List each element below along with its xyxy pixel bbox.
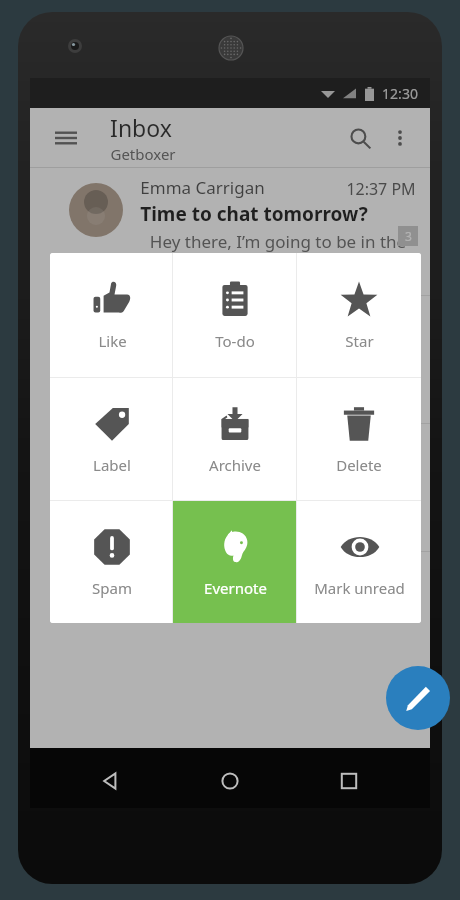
staticText: Inbox (110, 112, 172, 143)
staticText: Client introduction (140, 329, 319, 355)
staticText: Time to chat tomorrow? (140, 201, 368, 227)
button[interactable]: Spam (50, 500, 173, 623)
button[interactable]: Delete (297, 377, 421, 500)
staticText: Hannah Johnson (140, 304, 273, 327)
button[interactable]: Like (50, 253, 173, 377)
button[interactable]: Evernote (173, 500, 297, 623)
button[interactable]: Back (94, 764, 128, 798)
staticText: Getboxer (110, 144, 176, 164)
staticText: To-do (215, 331, 255, 351)
button[interactable]: Hannah Johnson (30, 296, 430, 424)
button[interactable]: Compose (386, 666, 450, 730)
staticText: 12:30 (382, 84, 418, 103)
staticText: Thanks so much for the introduction! I’l… (140, 358, 416, 381)
staticText: 11:42AM (350, 306, 416, 328)
staticText: Archive (209, 455, 261, 475)
button[interactable]: To-do (173, 253, 297, 377)
button[interactable]: More options (380, 118, 420, 158)
staticText: Lori Thompson (140, 432, 261, 455)
button[interactable]: Emma Carrigan (30, 168, 430, 296)
staticText: Spam (92, 578, 132, 598)
button[interactable]: Lori Thompson (30, 424, 430, 552)
button[interactable]: Home (213, 764, 247, 798)
button[interactable]: Menu (48, 120, 84, 156)
staticText: Delete (336, 455, 382, 475)
staticText: Star (345, 331, 374, 351)
button[interactable]: Mark unread (297, 500, 421, 623)
button[interactable]: Recents (332, 764, 366, 798)
staticText: 3 (405, 228, 412, 244)
staticText: Evernote (204, 578, 267, 598)
staticText: Mark unread (314, 578, 405, 598)
staticText: Like (98, 331, 127, 351)
staticText: 11:42AM (350, 434, 416, 456)
button[interactable]: Archive (173, 377, 297, 500)
button[interactable]: Star (297, 253, 421, 377)
staticText: Hey there, I’m going to be in the office (140, 230, 416, 253)
staticText: 12:37 PM (346, 178, 416, 200)
staticText: Emma Carrigan (140, 176, 265, 199)
staticText: Label (93, 455, 131, 475)
button[interactable]: Label (50, 377, 173, 500)
button[interactable]: Search (340, 118, 380, 158)
